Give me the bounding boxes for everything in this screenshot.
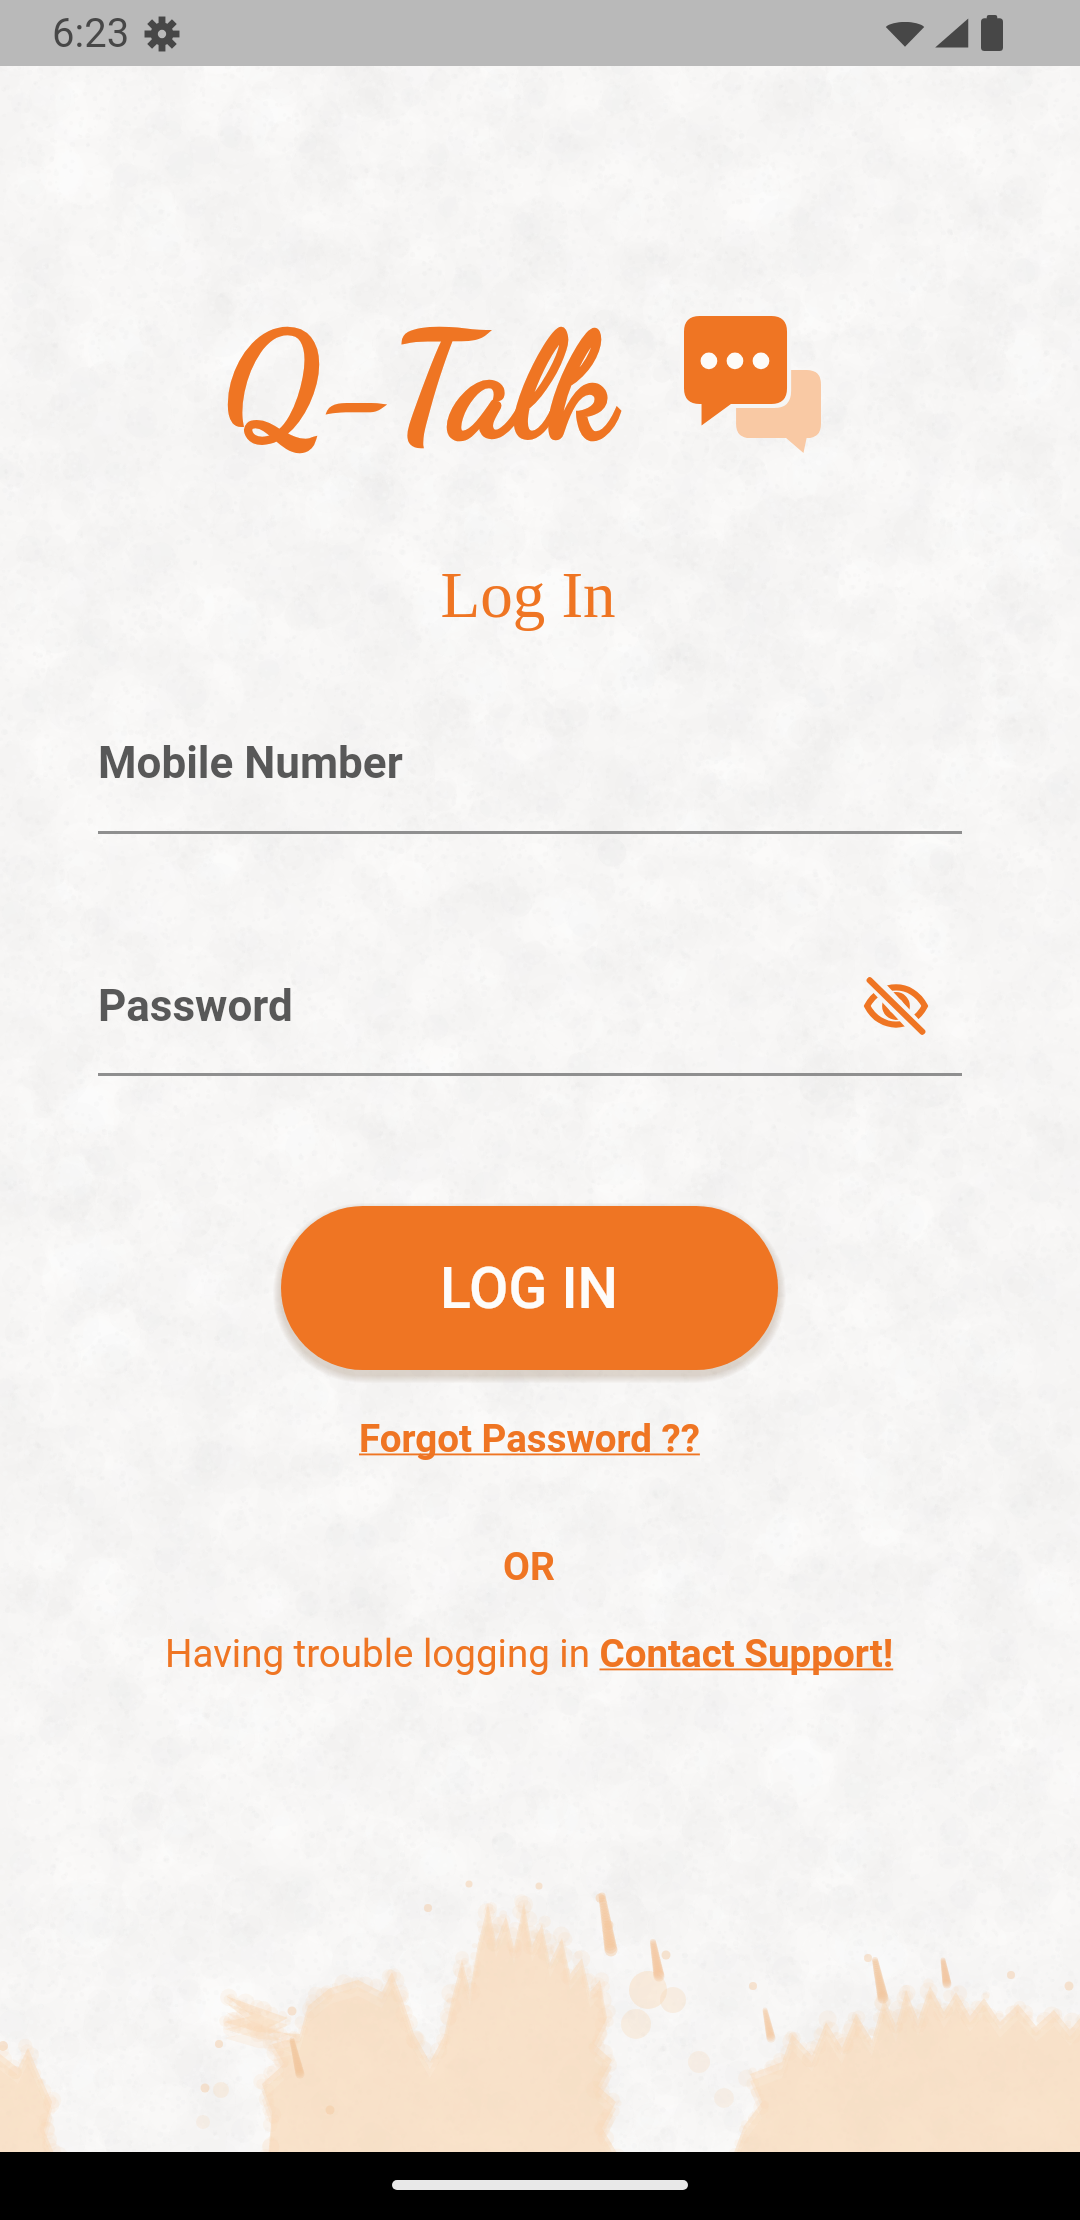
staticText: 6:23 [52, 10, 130, 57]
staticText: OR [0, 1544, 1069, 1590]
button[interactable]: Having trouble logging in Contact Suppor… [155, 1623, 904, 1684]
button[interactable]: LOG IN [281, 1206, 778, 1370]
button[interactable]: Mobile Number [98, 723, 962, 837]
staticText: Q-Talk [225, 300, 615, 474]
button[interactable]: Password [98, 966, 962, 1079]
staticText: Log In [0, 559, 1068, 631]
staticText: Mobile Number [98, 737, 403, 789]
staticText: LOG IN [440, 1255, 619, 1322]
staticText: Forgot Password ?? [359, 1416, 700, 1461]
staticText: Password [98, 980, 293, 1032]
staticText: Having trouble logging in Contact Suppor… [165, 1631, 894, 1676]
button[interactable]: Forgot Password ?? [349, 1408, 710, 1469]
button[interactable]: Show password [860, 970, 932, 1042]
